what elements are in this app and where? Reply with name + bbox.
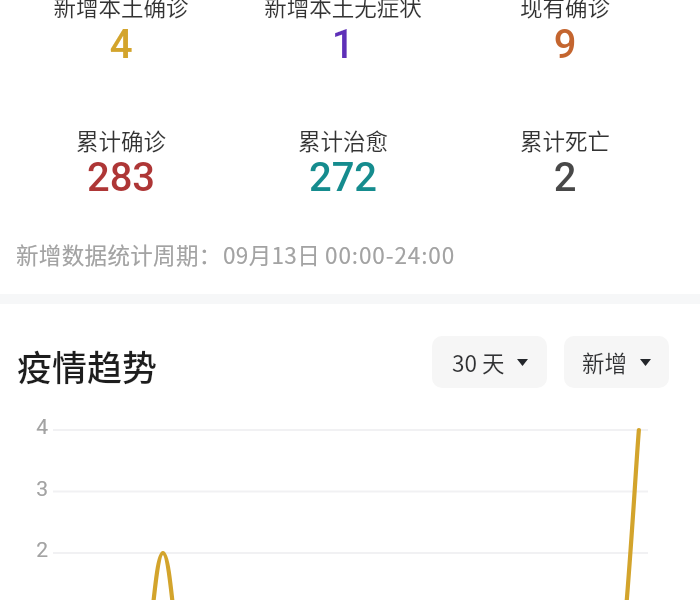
staticText: 现有确诊 <box>454 0 676 23</box>
staticText: 00:00-24:00 <box>325 238 456 271</box>
staticText: 3 <box>10 477 48 502</box>
button[interactable]: 30 天 <box>432 336 547 388</box>
button[interactable] <box>454 0 676 62</box>
staticText: 272 <box>232 154 454 201</box>
staticText: 新增 <box>582 346 628 379</box>
button[interactable] <box>10 0 232 62</box>
staticText: 2 <box>10 538 48 563</box>
staticText: 283 <box>10 154 232 201</box>
staticText: 疫情趋势 <box>17 340 158 391</box>
staticText: 9 <box>454 21 676 68</box>
button[interactable] <box>454 118 676 196</box>
staticText: 累计确诊 <box>10 124 232 157</box>
staticText: 1 <box>232 21 454 68</box>
staticText: 累计治愈 <box>232 124 454 157</box>
button[interactable] <box>232 0 454 62</box>
staticText: 2 <box>454 154 676 201</box>
button[interactable]: 新增 <box>564 336 669 388</box>
staticText: 新增本土确诊 <box>10 0 232 23</box>
staticText: 4 <box>10 21 232 68</box>
button[interactable] <box>232 118 454 196</box>
staticText: 09月13日 <box>223 238 321 271</box>
staticText: 30 天 <box>452 346 505 379</box>
staticText: 新增数据统计周期： <box>16 238 222 271</box>
button[interactable] <box>10 118 232 196</box>
other: 疫情趋势折线图 <box>0 0 700 600</box>
staticText: 累计死亡 <box>454 124 676 157</box>
staticText: 新增本土无症状 <box>232 0 454 23</box>
staticText: 4 <box>10 415 48 440</box>
